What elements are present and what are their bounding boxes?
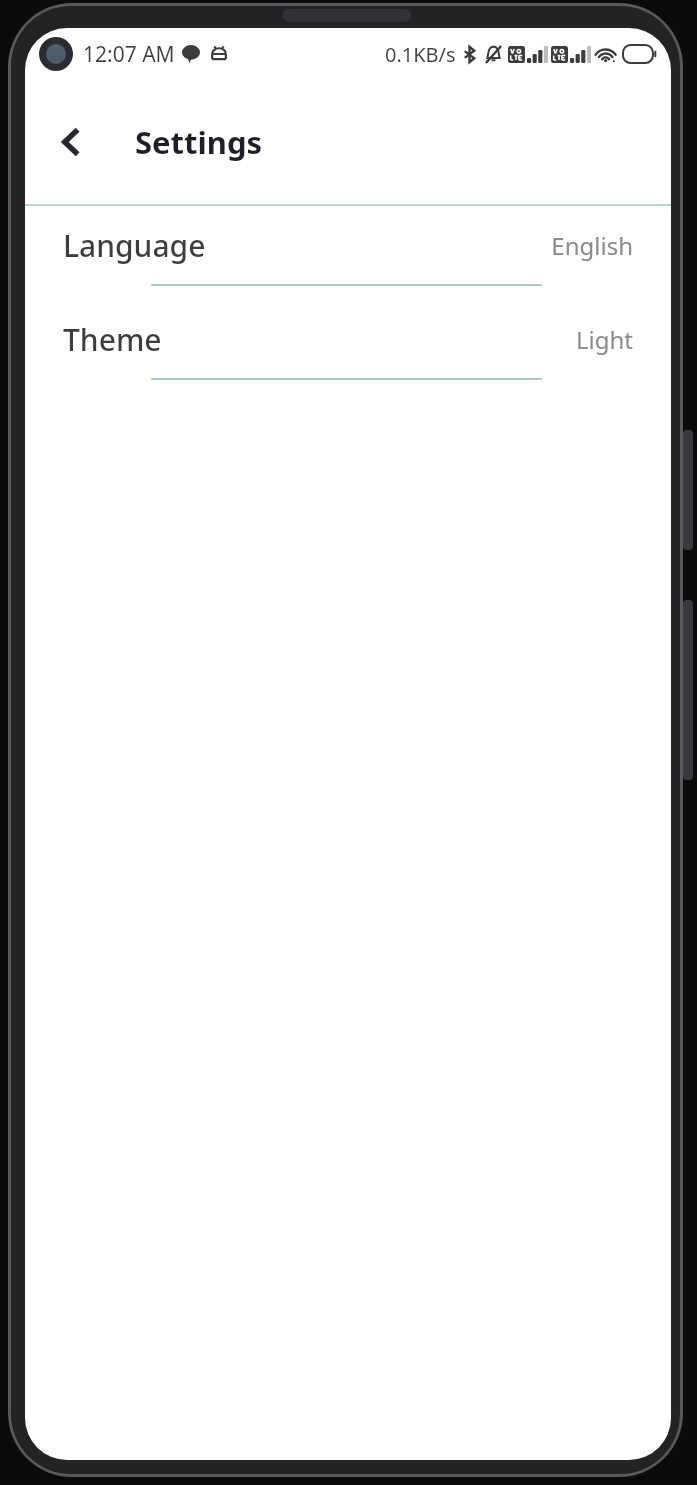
button[interactable]: Theme [25, 300, 671, 394]
staticText: 0.1KB/s [385, 41, 456, 68]
staticText: Theme [63, 319, 162, 360]
button[interactable]: Back [47, 118, 95, 166]
staticText: English [551, 229, 633, 262]
staticText: Light [575, 323, 633, 356]
staticText: Settings [135, 121, 263, 163]
staticText: Language [63, 225, 206, 266]
button[interactable]: Language [25, 206, 671, 300]
staticText: 12:07 AM [83, 40, 175, 69]
